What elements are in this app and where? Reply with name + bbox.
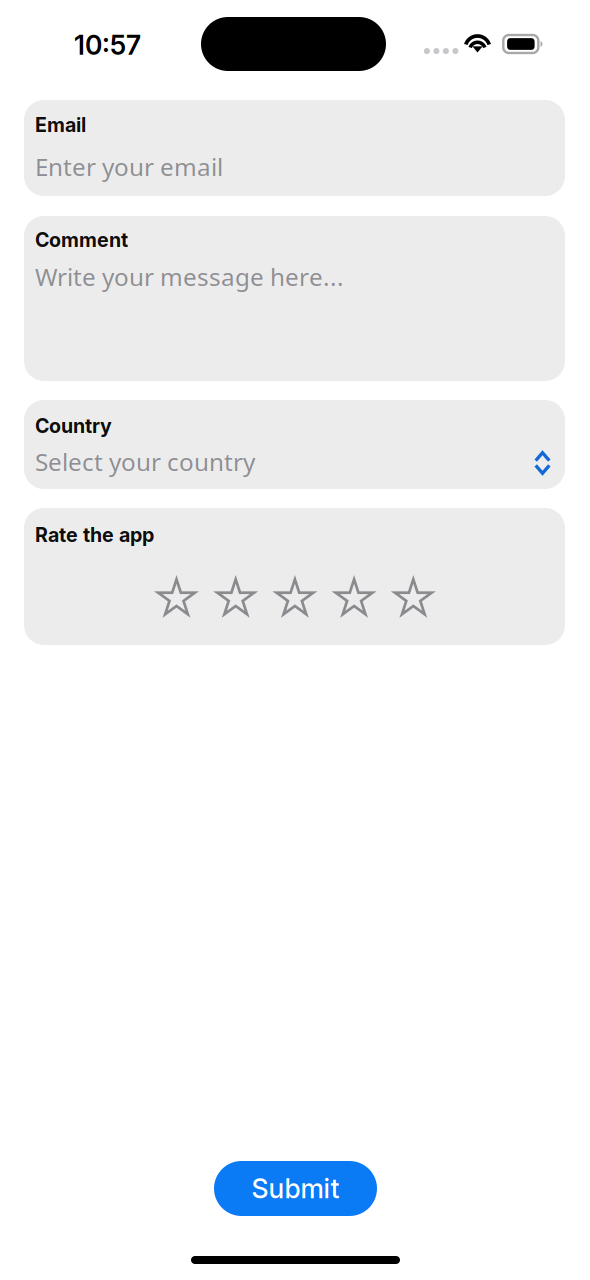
staticText: Select your country: [35, 445, 255, 478]
staticText: Submit: [251, 1172, 339, 1205]
button[interactable]: Email: [24, 100, 565, 196]
button[interactable]: Submit: [214, 1161, 377, 1216]
staticText: Enter your email: [35, 150, 223, 183]
staticText: Email: [35, 113, 86, 137]
button[interactable]: Rate 2 stars: [215, 578, 256, 619]
staticText: Rate the app: [35, 523, 154, 547]
staticText: 10:57: [74, 29, 141, 61]
staticText: Comment: [35, 228, 128, 252]
button[interactable]: Country: [24, 400, 565, 489]
button[interactable]: Rate 4 stars: [334, 578, 375, 619]
button[interactable]: Rate 1 stars: [156, 578, 197, 619]
button[interactable]: Rate 5 stars: [393, 578, 434, 619]
button[interactable]: Comment: [24, 216, 565, 381]
staticText: Country: [35, 414, 112, 438]
staticText: Write your message here...: [35, 260, 344, 293]
button[interactable]: Rate 3 stars: [274, 578, 315, 619]
